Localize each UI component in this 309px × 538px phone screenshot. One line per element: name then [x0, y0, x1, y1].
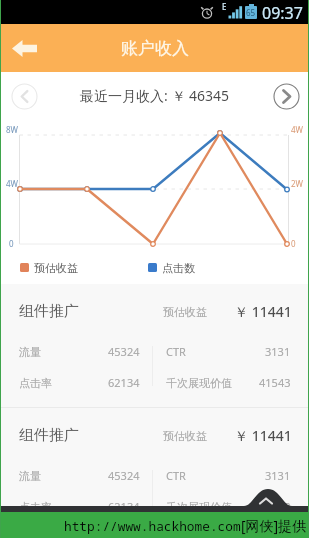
staticText: 4W	[6, 178, 19, 189]
staticText: 0	[9, 238, 14, 249]
staticText: CTR	[166, 468, 186, 483]
staticText: 41543	[259, 375, 291, 390]
staticText: 3131	[265, 344, 291, 359]
staticText: E	[222, 1, 227, 12]
staticText: CTR	[166, 344, 186, 359]
staticText: 0	[291, 238, 296, 249]
staticText: 点击率	[19, 500, 52, 514]
staticText: http://www.hackhome.com	[64, 517, 241, 534]
button[interactable]: Back	[4, 28, 44, 68]
button[interactable]: Next month	[273, 83, 300, 110]
staticText: 最近一月收入: ￥ 46345	[80, 86, 230, 105]
staticText: ￥ 11441	[234, 302, 292, 321]
staticText: 流量	[19, 469, 41, 483]
staticText: [网侠]提供	[241, 516, 307, 535]
staticText: 45324	[108, 468, 140, 483]
staticText: 点击数	[162, 261, 195, 275]
staticText: 62134	[108, 499, 140, 514]
staticText: 8W	[6, 124, 19, 135]
button[interactable]: 组件推广	[0, 284, 309, 407]
staticText: 45324	[108, 344, 140, 359]
staticText: ￥ 11441	[234, 426, 292, 445]
staticText: 预估收益	[163, 429, 207, 443]
staticText: 流量	[19, 345, 41, 359]
button[interactable]: 组件推广	[0, 408, 309, 531]
staticText: 组件推广	[19, 426, 79, 445]
staticText: 预估收益	[163, 305, 207, 319]
staticText: 预估收益	[34, 261, 78, 275]
button[interactable]: Previous month	[11, 83, 38, 110]
staticText: 41543	[259, 499, 291, 514]
staticText: 账户收入	[121, 38, 189, 59]
staticText: 09:37	[262, 2, 303, 24]
staticText: 3131	[265, 468, 291, 483]
staticText: 千次展现价值	[166, 500, 232, 514]
staticText: 2W	[291, 178, 304, 189]
button[interactable]: Scroll to top	[0, 479, 309, 512]
staticText: 千次展现价值	[166, 376, 232, 390]
staticText: 65	[246, 7, 256, 18]
staticText: 62134	[108, 375, 140, 390]
staticText: 4W	[291, 124, 304, 135]
staticText: 点击率	[19, 376, 52, 390]
staticText: 组件推广	[19, 302, 79, 321]
